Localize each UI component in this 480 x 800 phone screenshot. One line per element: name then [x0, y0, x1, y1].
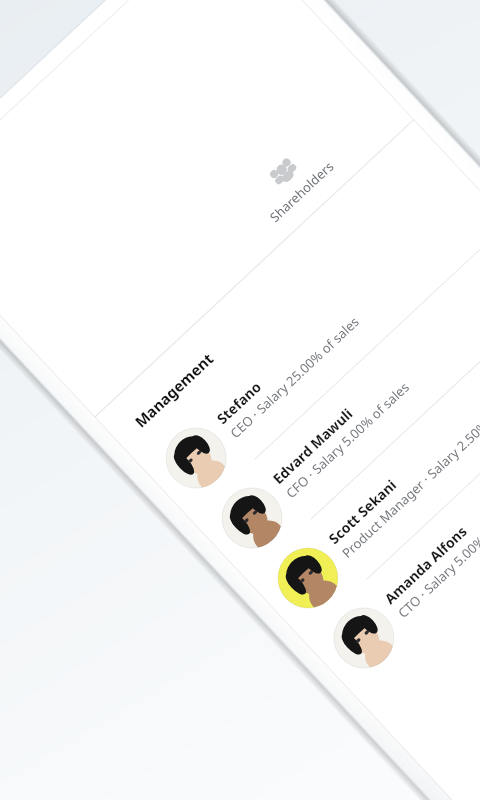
button[interactable]: with friends.: [0, 0, 480, 800]
